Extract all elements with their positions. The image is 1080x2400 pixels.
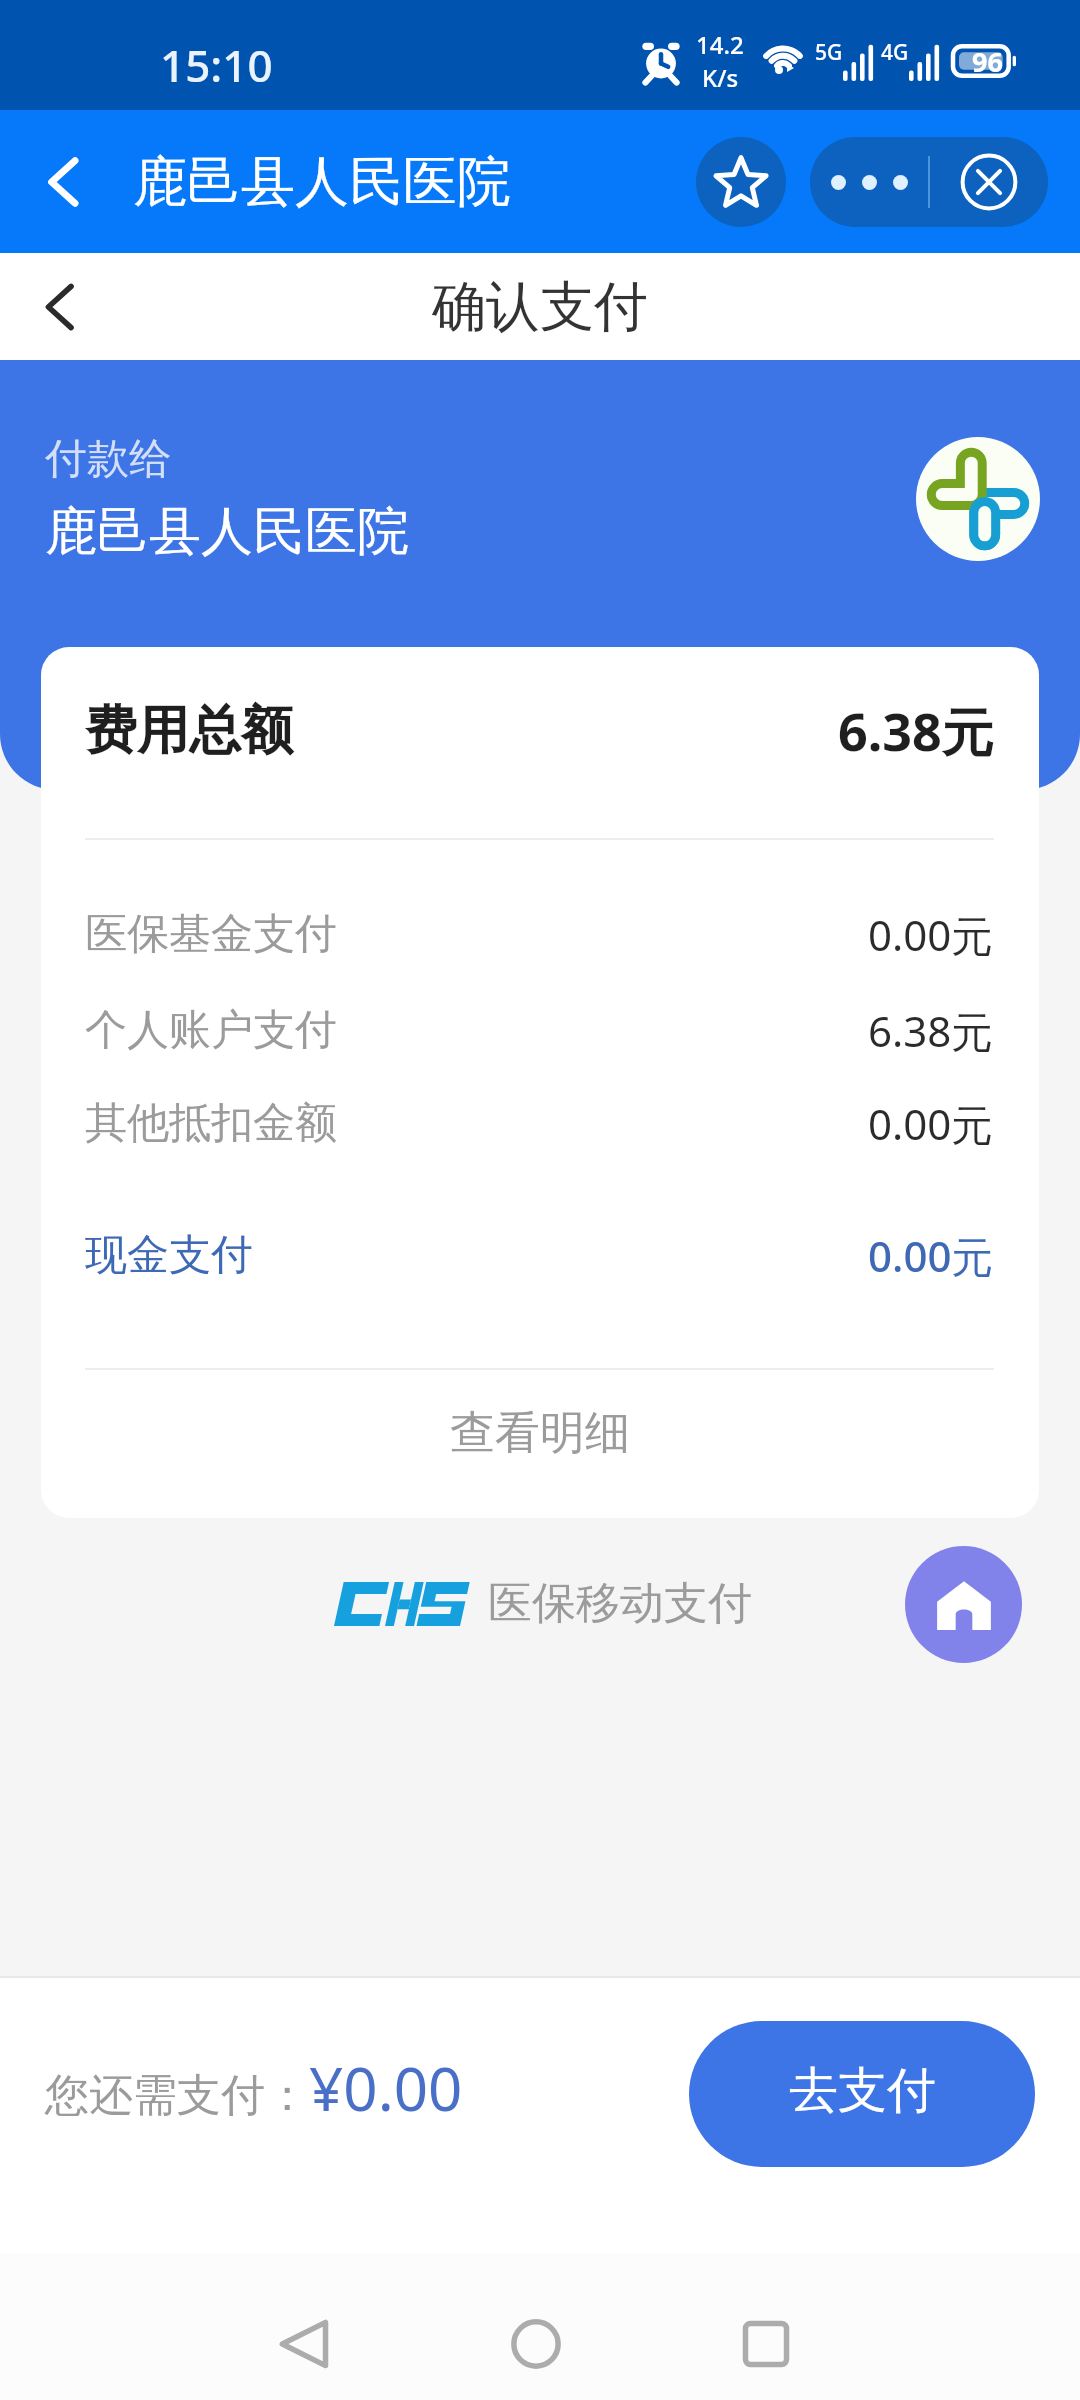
staticText: 去支付 <box>789 2060 936 2122</box>
button[interactable]: Back <box>20 144 96 220</box>
staticText: 查看明细 <box>450 1405 630 1462</box>
staticText: K/s <box>702 61 739 94</box>
button[interactable]: Home <box>905 1546 1022 1663</box>
staticText: 6.38元 <box>868 1002 994 1059</box>
staticText: ¥0.00 <box>309 2047 463 2129</box>
staticText: 现金支付 <box>85 1229 253 1282</box>
staticText: 6.38元 <box>838 695 994 766</box>
staticText: 0.00元 <box>868 906 994 963</box>
staticText: 14.2 <box>696 28 744 61</box>
staticText: 4G <box>881 38 909 67</box>
button[interactable]: 查看明细 <box>85 1370 994 1517</box>
staticText: 确认支付 <box>432 273 648 341</box>
staticText: 付款给 <box>45 433 171 486</box>
button[interactable]: Back <box>262 2301 348 2387</box>
staticText: 96 <box>972 43 1003 80</box>
button[interactable]: Home <box>493 2301 579 2387</box>
button[interactable]: Recent apps <box>723 2301 809 2387</box>
staticText: 0.00元 <box>868 1227 994 1284</box>
button[interactable]: 去支付 <box>689 2021 1035 2167</box>
staticText: 鹿邑县人民医院 <box>133 148 511 216</box>
staticText: 您还需支付： <box>45 2068 309 2123</box>
staticText: 5G <box>815 38 843 67</box>
staticText: 0.00元 <box>868 1095 994 1152</box>
staticText: 鹿邑县人民医院 <box>45 499 409 565</box>
staticText: 其他抵扣金额 <box>85 1097 337 1150</box>
button[interactable]: Back <box>11 264 97 350</box>
staticText: 15:10 <box>160 35 273 95</box>
staticText: 个人账户支付 <box>85 1004 337 1057</box>
button[interactable]: Favorite <box>696 137 786 227</box>
button[interactable]: More options <box>810 137 928 227</box>
staticText: 医保移动支付 <box>488 1576 752 1631</box>
staticText: 费用总额 <box>85 698 293 764</box>
button[interactable]: Close <box>930 137 1048 227</box>
staticText: 医保基金支付 <box>85 908 337 961</box>
